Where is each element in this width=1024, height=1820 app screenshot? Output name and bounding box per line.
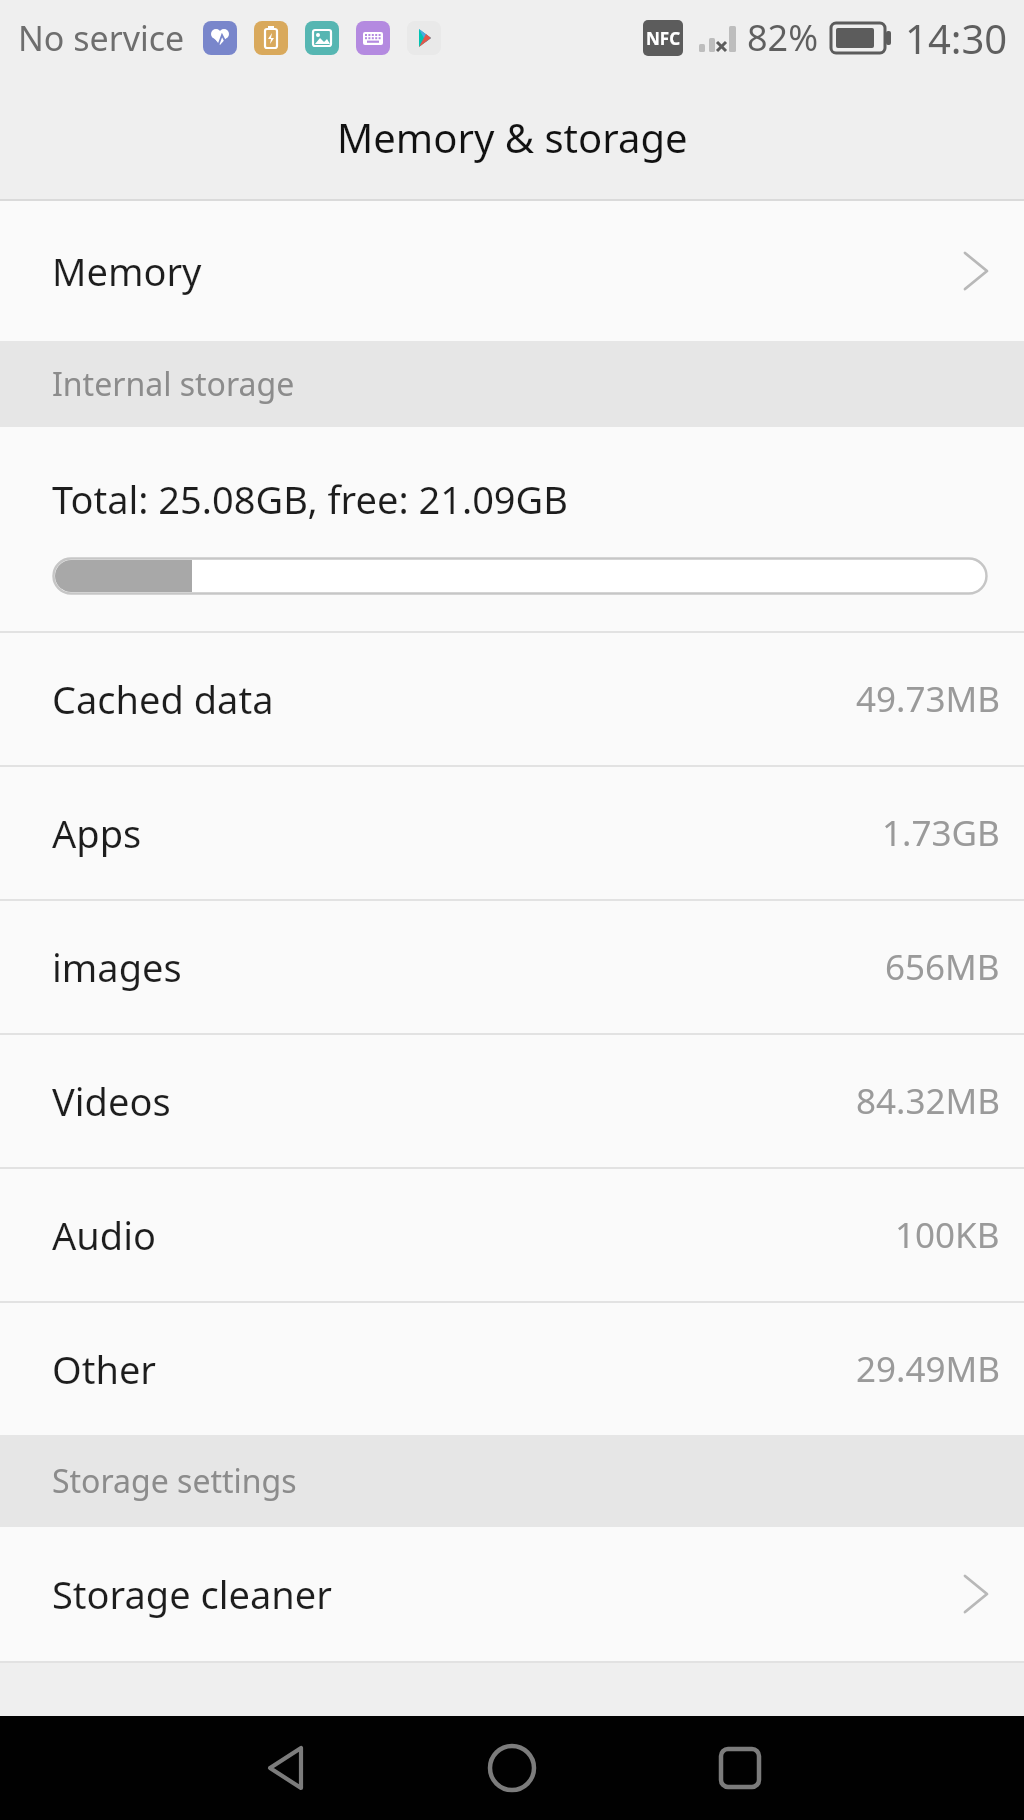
staticText: Internal storage	[52, 362, 295, 406]
staticText: Storage cleaner	[52, 1568, 332, 1620]
button[interactable]: Memory	[0, 201, 1024, 341]
staticText: images	[52, 941, 182, 993]
button[interactable]	[253, 1736, 317, 1800]
button[interactable]: Total: 25.08GB, free: 21.09GB	[0, 427, 1024, 631]
staticText: Memory & storage	[337, 110, 688, 164]
staticText: Apps	[52, 807, 142, 859]
staticText: Total: 25.08GB, free: 21.09GB	[52, 473, 568, 525]
button[interactable]: Other	[0, 1303, 1024, 1435]
button[interactable]: Cached data	[0, 633, 1024, 765]
staticText: Cached data	[52, 673, 274, 725]
staticText: Audio	[52, 1209, 156, 1261]
staticText: 84.32MB	[856, 1077, 1000, 1125]
button[interactable]: images	[0, 901, 1024, 1033]
button[interactable]	[480, 1736, 544, 1800]
staticText: No service	[18, 15, 185, 61]
staticText: 100KB	[895, 1211, 1000, 1259]
staticText: Other	[52, 1343, 157, 1395]
button[interactable]: Apps	[0, 767, 1024, 899]
staticText: 656MB	[885, 943, 1000, 991]
staticText: 49.73MB	[856, 675, 1000, 723]
button[interactable]: Audio	[0, 1169, 1024, 1301]
staticText: Videos	[52, 1075, 171, 1127]
staticText: 14:30	[905, 11, 1008, 65]
button[interactable]: Storage cleaner	[0, 1527, 1024, 1661]
button[interactable]	[708, 1736, 772, 1800]
staticText: NFC	[646, 27, 681, 50]
staticText: 1.73GB	[882, 809, 1000, 857]
staticText: Storage settings	[52, 1459, 297, 1503]
staticText: 29.49MB	[856, 1345, 1000, 1393]
staticText: 82%	[747, 13, 819, 62]
button[interactable]: Videos	[0, 1035, 1024, 1167]
staticText: Memory	[52, 245, 202, 297]
